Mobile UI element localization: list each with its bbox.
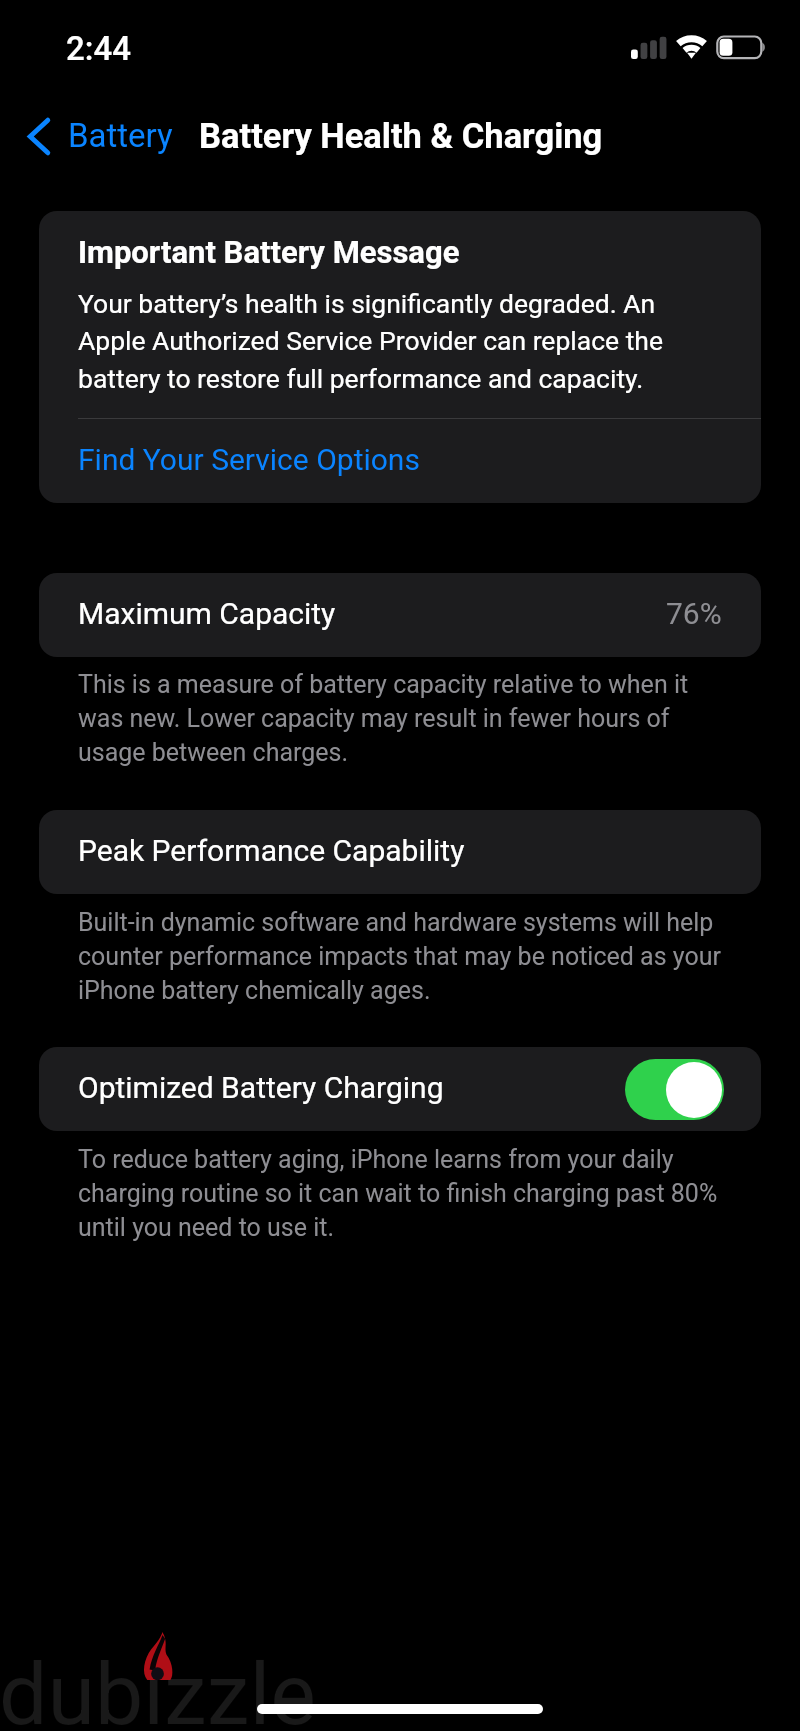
button[interactable]: Optimized Battery Charging [39, 1047, 761, 1131]
staticText: To reduce battery aging, iPhone learns f… [78, 1145, 728, 1242]
staticText: 2:44 [66, 29, 131, 68]
staticText: Battery Health & Charging [199, 116, 603, 156]
staticText: Battery [68, 116, 173, 155]
staticText: Find Your Service Options [78, 442, 420, 477]
staticText: Important Battery Message [78, 234, 460, 270]
button[interactable]: Battery [0, 102, 187, 170]
staticText: Peak Performance Capability [78, 833, 465, 868]
staticText: Optimized Battery Charging [78, 1070, 444, 1105]
staticText: Built-in dynamic software and hardware s… [78, 908, 728, 1005]
staticText: Maximum Capacity [78, 596, 336, 631]
staticText: 76% [666, 596, 722, 631]
staticText: This is a measure of battery capacity re… [78, 670, 728, 767]
button[interactable]: Maximum Capacity [39, 573, 761, 657]
button[interactable]: Peak Performance Capability [39, 810, 761, 894]
button[interactable]: Find Your Service Options [39, 417, 761, 501]
staticText: dubizzle [0, 1644, 316, 1731]
button[interactable]: Optimized Battery Charging [625, 1059, 724, 1120]
staticText: Your battery’s health is significantly d… [78, 288, 678, 394]
